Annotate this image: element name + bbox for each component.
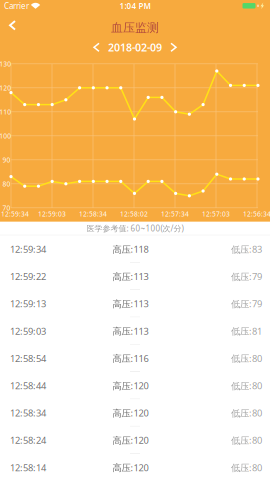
staticText: 血压监测	[111, 20, 159, 35]
staticText: 12:58:14	[10, 461, 46, 474]
staticText: 高压:120	[112, 434, 148, 446]
staticText: 2018-02-09	[108, 40, 162, 54]
staticText: 高压:113	[112, 325, 148, 337]
staticText: 低压:79	[231, 298, 262, 310]
staticText: 高压:116	[112, 352, 148, 365]
staticText: 110	[0, 107, 11, 116]
staticText: 低压:80	[231, 407, 262, 419]
staticText: 80	[2, 179, 10, 188]
staticText: 12:57:34	[161, 209, 189, 218]
staticText: 12:59:03	[38, 209, 66, 218]
staticText: 高压:113	[112, 270, 148, 283]
staticText: 低压:80	[231, 352, 262, 365]
staticText: 高压:120	[112, 379, 148, 392]
staticText: 12:59:22	[10, 270, 46, 283]
staticText: 12:58:54	[10, 352, 46, 365]
staticText: 12:59:03	[10, 325, 46, 337]
staticText: 高压:118	[112, 243, 148, 255]
staticText: 70	[2, 203, 10, 212]
staticText: 低压:80	[231, 379, 262, 392]
staticText: 100	[0, 131, 11, 140]
staticText: 12:58:44	[10, 379, 46, 392]
staticText: 12:56:34	[243, 209, 270, 218]
staticText: 低压:79	[231, 270, 262, 283]
staticText: 医学参考值: 60~100(次/分)	[86, 223, 183, 234]
staticText: 130	[0, 59, 11, 68]
staticText: 12:58:34	[79, 209, 107, 218]
staticText: 高压:120	[112, 407, 148, 419]
staticText: 1:04 PM	[119, 0, 150, 11]
staticText: 低压:80	[231, 434, 262, 446]
staticText: 12:58:34	[10, 407, 46, 419]
button[interactable]: Next day	[169, 41, 178, 53]
staticText: Carrier	[4, 0, 29, 11]
staticText: 12:58:02	[120, 209, 148, 218]
staticText: 90	[2, 155, 10, 164]
staticText: 低压:83	[231, 243, 262, 255]
staticText: 12:58:24	[10, 434, 46, 446]
staticText: 低压:80	[231, 461, 262, 474]
staticText: 12:59:13	[10, 298, 46, 310]
button[interactable]: Back	[4, 15, 21, 35]
staticText: 低压:81	[231, 325, 262, 337]
staticText: 12:59:34	[10, 243, 46, 255]
staticText: 12:57:03	[202, 209, 230, 218]
staticText: 高压:120	[112, 461, 148, 474]
staticText: 120	[0, 83, 11, 92]
staticText: 12:59:34	[1, 209, 29, 218]
staticText: 高压:113	[112, 298, 148, 310]
button[interactable]: Previous day	[92, 41, 101, 53]
